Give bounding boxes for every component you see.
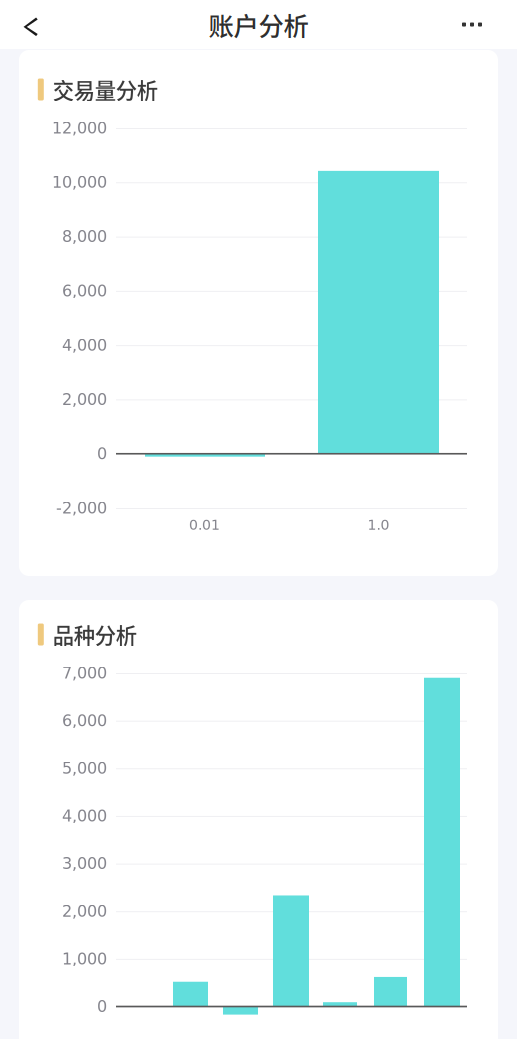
staticText: 1.0 — [368, 517, 390, 533]
staticText: 10,000 — [52, 173, 107, 192]
staticText: 4,000 — [62, 336, 107, 354]
staticText: -2,000 — [56, 499, 107, 517]
staticText: 0 — [97, 997, 107, 1016]
button[interactable]: Back — [5, 0, 57, 49]
staticText: 4,000 — [62, 807, 107, 825]
staticText: 品种分析 — [53, 619, 137, 650]
staticText: 2,000 — [62, 902, 107, 920]
staticText: 交易量分析 — [53, 74, 158, 105]
staticText: 1,000 — [62, 949, 107, 968]
staticText: 3,000 — [62, 854, 107, 873]
staticText: 8,000 — [62, 227, 107, 246]
staticText: 2,000 — [62, 390, 107, 409]
staticText: 6,000 — [62, 281, 107, 300]
staticText: 12,000 — [52, 119, 107, 137]
staticText: 5,000 — [62, 759, 107, 778]
button[interactable]: More options — [445, 0, 499, 49]
staticText: 账户分析 — [208, 6, 308, 43]
staticText: 0 — [97, 444, 107, 463]
staticText: 7,000 — [62, 664, 107, 682]
staticText: 6,000 — [62, 711, 107, 730]
staticText: 0.01 — [189, 517, 220, 533]
